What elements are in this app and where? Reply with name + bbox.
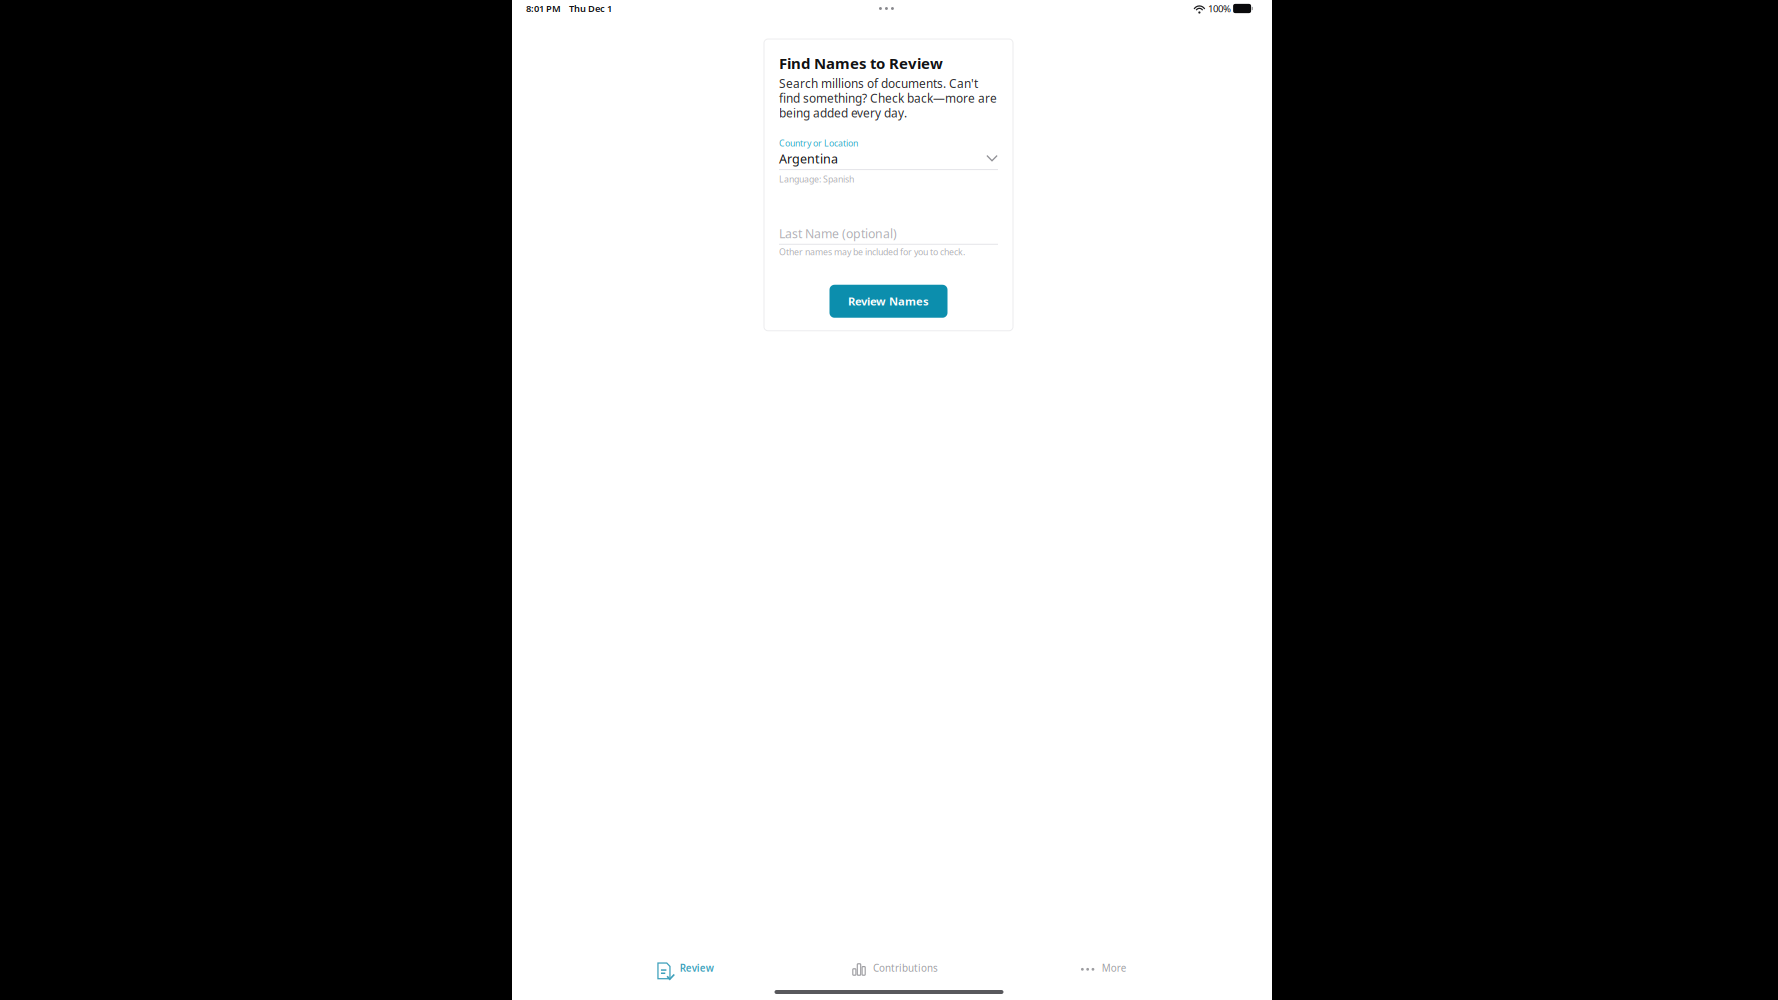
staticText: Argentina (779, 150, 838, 167)
staticText: Review Names (848, 294, 929, 309)
staticText: Search millions of documents. Can't find… (779, 75, 997, 121)
button[interactable]: Review (581, 955, 790, 981)
staticText: Find Names to Review (779, 53, 943, 73)
staticText: 100% (1208, 2, 1231, 15)
button[interactable]: Last Name (optional) (779, 225, 998, 242)
button[interactable]: Contributions (790, 955, 998, 981)
staticText: Review (680, 961, 714, 975)
button[interactable]: More (998, 955, 1207, 981)
staticText: Other names may be included for you to c… (779, 246, 965, 258)
staticText: 8:01 PM (526, 2, 561, 15)
staticText: More (1102, 961, 1127, 975)
staticText: Country or Location (779, 137, 858, 149)
button[interactable]: Argentina (779, 150, 998, 167)
staticText: Contributions (873, 961, 938, 975)
staticText: Language: Spanish (779, 173, 854, 185)
staticText: Last Name (optional) (779, 225, 897, 242)
staticText: Thu Dec 1 (569, 2, 612, 15)
button[interactable]: Review Names (829, 285, 947, 318)
